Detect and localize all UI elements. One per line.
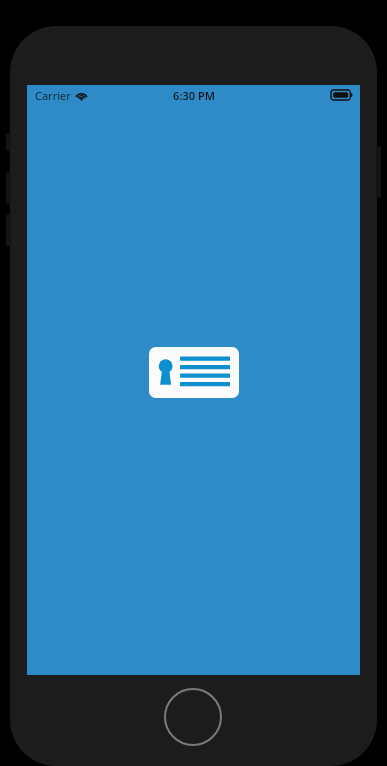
staticText: 6:30 PM <box>173 88 215 103</box>
button[interactable]: Home <box>164 688 222 746</box>
button[interactable]: ID card <box>149 347 239 398</box>
staticText: Carrier <box>35 88 71 103</box>
